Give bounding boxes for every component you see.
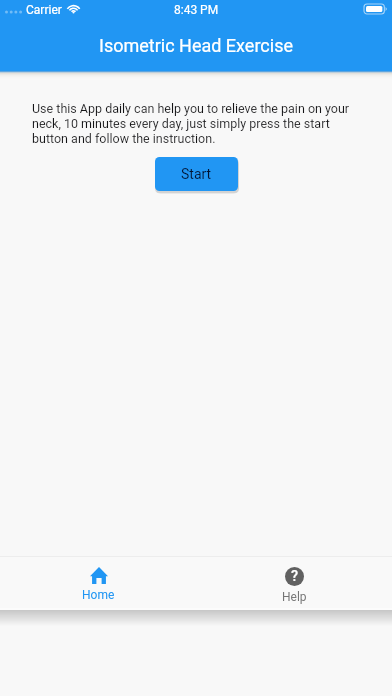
- button[interactable]: Home: [0, 557, 196, 608]
- other: Battery full: [364, 4, 387, 14]
- staticText: Isometric Head Exercise: [0, 35, 392, 56]
- other: Home: [90, 567, 108, 584]
- button[interactable]: Start: [155, 157, 238, 191]
- staticText: Carrier: [26, 3, 62, 17]
- staticText: Home: [82, 588, 115, 602]
- staticText: Start: [181, 166, 212, 182]
- button[interactable]: Help: [196, 557, 392, 608]
- staticText: ?: [291, 568, 299, 585]
- other: Signal strength: [5, 10, 24, 14]
- staticText: Help: [282, 590, 307, 604]
- staticText: 8:43 PM: [174, 3, 219, 17]
- other: Help: [285, 567, 304, 586]
- staticText: Use this App daily can help you to relie…: [32, 101, 354, 146]
- other: Wi-Fi: [67, 4, 80, 14]
